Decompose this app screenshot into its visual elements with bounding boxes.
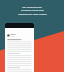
- button[interactable]: [5, 23, 34, 72]
- staticText: COMMUNITY IDEA TODAY!: [18, 13, 47, 16]
- staticText: VALIDATE YOUR IDEA: [21, 9, 44, 12]
- staticText: GET STARTED AND: [22, 6, 42, 9]
